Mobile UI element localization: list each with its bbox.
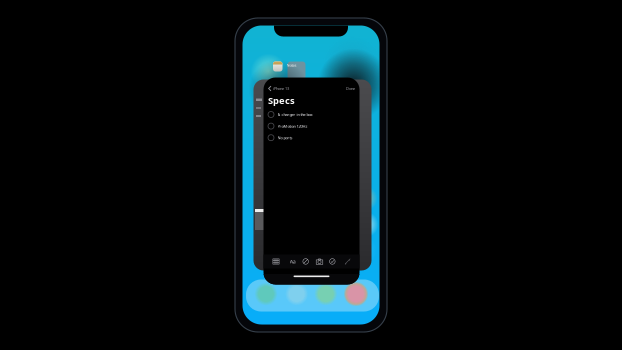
staticText: Done — [346, 86, 355, 91]
button[interactable]: No ports — [268, 132, 355, 143]
staticText: Notes — [286, 62, 296, 68]
staticText: Aa — [290, 258, 296, 265]
button[interactable]: Checklist — [327, 255, 338, 267]
button[interactable]: Table — [270, 255, 281, 267]
button[interactable] — [273, 61, 282, 71]
button[interactable]: Format — [287, 255, 298, 267]
button[interactable]: App — [313, 281, 338, 306]
button[interactable]: New note — [342, 255, 353, 267]
button[interactable]: Insert media — [314, 255, 325, 267]
staticText: Specs — [268, 94, 295, 107]
button[interactable]: App — [343, 281, 368, 306]
staticText: A charger in the box — [278, 112, 313, 117]
button[interactable]: App — [284, 281, 309, 306]
button[interactable]: A charger in the box — [268, 109, 355, 120]
button[interactable]: Markup — [300, 255, 311, 267]
button[interactable]: Done — [331, 84, 355, 93]
staticText: No ports — [278, 135, 293, 140]
staticText: ProMotion 120Hz — [278, 123, 308, 129]
button[interactable]: iPhone 13 — [268, 84, 289, 93]
staticText: iPhone 13 — [273, 86, 289, 91]
button[interactable]: App — [253, 281, 278, 306]
button[interactable]: ProMotion 120Hz — [268, 121, 355, 132]
